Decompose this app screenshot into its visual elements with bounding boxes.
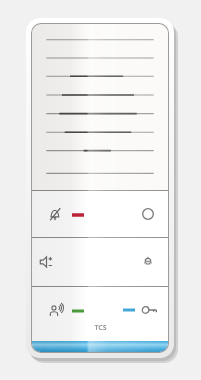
button[interactable]: Light [100, 238, 168, 286]
button[interactable]: Door opener [100, 191, 168, 237]
button[interactable]: Unlock door [100, 287, 168, 341]
staticText: TCS [94, 323, 107, 333]
button[interactable]: Talk [32, 287, 100, 341]
button[interactable]: Volume [32, 238, 100, 286]
button[interactable]: Mute ringer [32, 191, 100, 237]
